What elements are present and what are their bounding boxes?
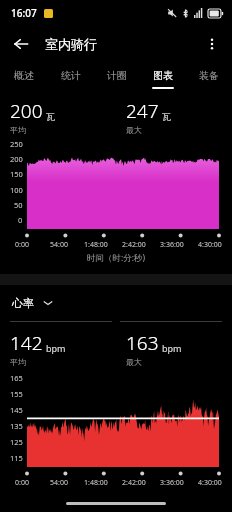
button[interactable]: 计圈 [94, 62, 140, 92]
staticText: 4:30:00 [198, 478, 222, 488]
staticText: 3:36:00 [160, 478, 184, 488]
staticText: 142 [10, 330, 43, 356]
button[interactable]: 心率 [0, 294, 232, 312]
staticText: 心率 [12, 296, 34, 310]
staticText: 2:42:00 [122, 478, 146, 488]
staticText: 250 [10, 139, 23, 149]
staticText: 0:00 [15, 478, 29, 488]
staticText: 4:30:00 [198, 240, 222, 250]
staticText: 2:42:00 [122, 240, 146, 250]
staticText: 1:48:00 [84, 240, 108, 250]
button[interactable]: Back [6, 29, 36, 59]
staticText: 200 [10, 98, 43, 124]
staticText: 平均 [10, 125, 26, 135]
staticText: bpm [46, 342, 66, 354]
staticText: 247 [126, 98, 159, 124]
button[interactable]: More options [197, 29, 227, 59]
staticText: 图表 [153, 69, 173, 82]
staticText: 165 [10, 373, 23, 383]
staticText: 0 [18, 215, 23, 225]
staticText: 200 [10, 154, 23, 164]
staticText: 1:48:00 [84, 478, 108, 488]
staticText: 150 [10, 169, 23, 179]
staticText: 统计 [61, 69, 81, 82]
staticText: 54:00 [50, 478, 68, 488]
button[interactable]: 图表 [140, 62, 186, 92]
staticText: 平均 [10, 357, 26, 367]
staticText: 3:36:00 [160, 240, 184, 250]
staticText: 时间（时:分:秒) [0, 252, 232, 264]
staticText: 50 [14, 200, 23, 210]
staticText: bpm [162, 342, 182, 354]
button[interactable]: 统计 [47, 62, 94, 92]
staticText: 16:07 [11, 6, 37, 20]
button[interactable]: 概述 [0, 62, 47, 92]
staticText: 145 [10, 405, 23, 415]
staticText: 115 [10, 453, 23, 463]
button[interactable]: 装备 [186, 62, 232, 92]
staticText: 室内骑行 [45, 36, 97, 52]
staticText: 163 [126, 330, 159, 356]
staticText: 0:00 [15, 240, 29, 250]
staticText: 135 [10, 421, 23, 431]
staticText: 54:00 [50, 240, 68, 250]
staticText: 计圈 [107, 69, 127, 82]
staticText: 装备 [199, 69, 219, 82]
staticText: 100 [10, 185, 23, 195]
staticText: 瓦 [162, 111, 171, 122]
staticText: 125 [10, 437, 23, 447]
staticText: 最大 [126, 125, 142, 135]
staticText: 瓦 [46, 111, 55, 122]
staticText: 最大 [126, 357, 142, 367]
staticText: 概述 [14, 69, 34, 82]
staticText: 155 [10, 389, 23, 399]
